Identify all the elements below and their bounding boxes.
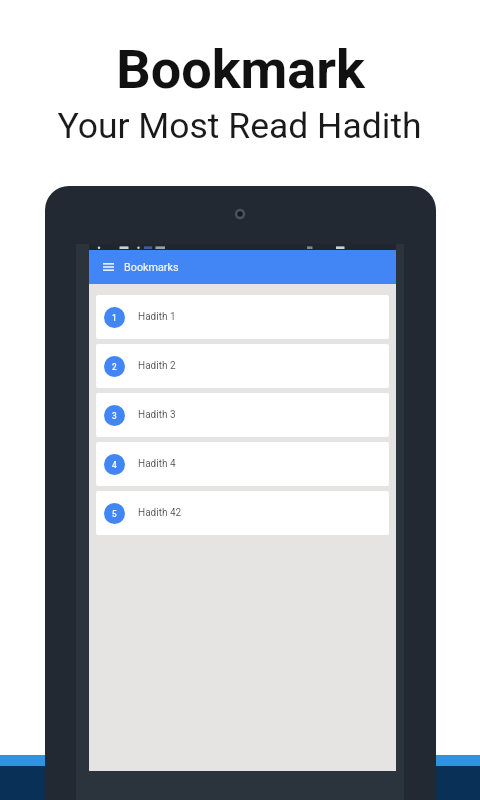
button[interactable]: Open navigation menu (89, 250, 396, 284)
staticText: Hadith 42 (138, 507, 182, 519)
button[interactable]: 3 (96, 393, 389, 437)
staticText: 1 (112, 313, 117, 323)
staticText: Hadith 4 (138, 458, 176, 470)
staticText: 2 (112, 362, 117, 372)
staticText: 5 (112, 509, 117, 519)
staticText: Hadith 2 (138, 360, 176, 372)
button[interactable]: 1 (96, 295, 389, 339)
staticText: Bookmarks (124, 261, 179, 274)
staticText: Hadith 1 (138, 311, 176, 323)
button[interactable]: 2 (96, 344, 389, 388)
button[interactable]: 5 (96, 491, 389, 535)
staticText: 4 (112, 460, 117, 470)
button[interactable]: Open navigation menu (98, 257, 118, 277)
staticText: Bookmark (116, 38, 365, 101)
staticText: 3 (112, 411, 117, 421)
staticText: Your Most Read Hadith (57, 105, 422, 147)
button[interactable]: 4 (96, 442, 389, 486)
staticText: Hadith 3 (138, 409, 176, 421)
